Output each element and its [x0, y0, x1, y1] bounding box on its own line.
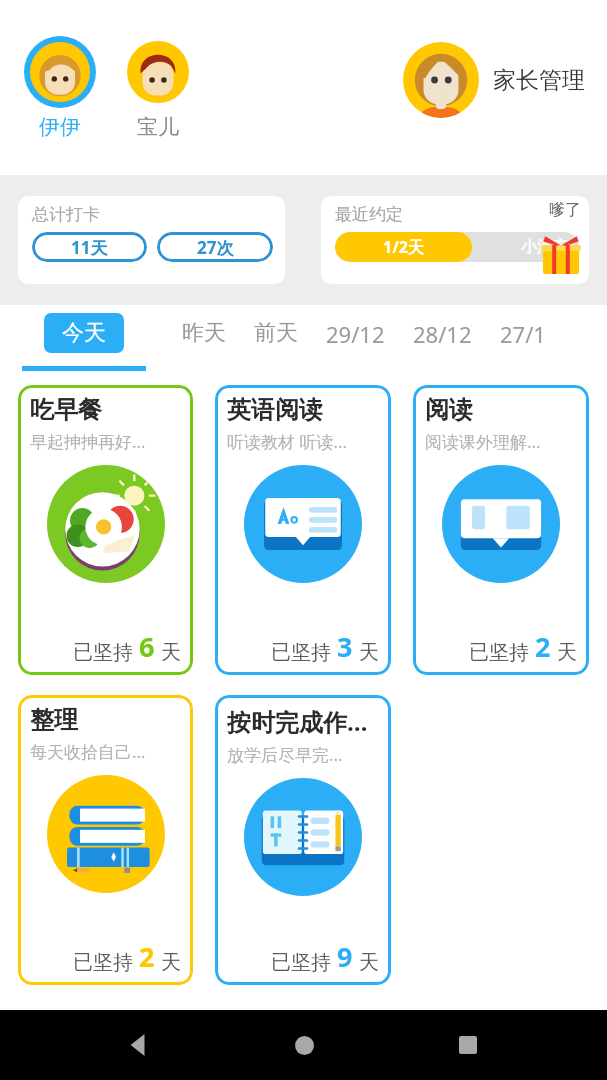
staticText: 已坚持 — [271, 640, 331, 665]
staticText: 29/12 — [326, 319, 385, 349]
staticText: 吃早餐 — [30, 395, 102, 425]
button[interactable]: 今天 — [44, 313, 124, 353]
staticText: 听读教材 听读… — [227, 430, 347, 453]
button[interactable]: 吃早餐 — [18, 385, 193, 675]
staticText: 天 — [557, 640, 577, 665]
button[interactable]: Home — [278, 1019, 330, 1071]
staticText: 已坚持 — [73, 950, 133, 975]
staticText: 天 — [359, 640, 379, 665]
staticText: 1/2天 — [383, 236, 424, 258]
staticText: 昨天 — [182, 319, 226, 347]
button[interactable]: 宝儿 — [122, 36, 194, 140]
button[interactable]: 总计打卡 — [18, 196, 285, 284]
staticText: 已坚持 — [469, 640, 529, 665]
staticText: 阅读 — [425, 395, 473, 425]
staticText: 27次 — [197, 236, 234, 259]
staticText: 2 — [535, 628, 551, 665]
staticText: 已坚持 — [73, 640, 133, 665]
staticText: 总计打卡 — [32, 204, 100, 225]
button[interactable]: 阅读 — [413, 385, 589, 675]
staticText: 伊伊 — [39, 114, 81, 140]
staticText: 9 — [337, 938, 353, 975]
staticText: 3 — [337, 628, 353, 665]
button[interactable]: 伊伊 — [24, 36, 96, 140]
button[interactable]: 按时完成作… — [215, 695, 391, 985]
staticText: 2 — [139, 938, 155, 975]
staticText: 最近约定 — [335, 204, 403, 225]
staticText: 整理 — [30, 705, 78, 735]
staticText: 天 — [359, 950, 379, 975]
staticText: 每天收拾自己… — [30, 740, 146, 763]
staticText: 家长管理 — [493, 66, 585, 95]
staticText: 阅读课外理解… — [425, 430, 541, 453]
staticText: 天 — [161, 640, 181, 665]
staticText: 11天 — [71, 236, 108, 259]
button[interactable]: 27/1 — [486, 313, 560, 355]
other: Gift reward — [539, 230, 583, 274]
staticText: 28/12 — [413, 319, 472, 349]
button[interactable]: Back — [113, 1019, 165, 1071]
button[interactable]: 英语阅读 — [215, 385, 391, 675]
button[interactable]: 昨天 — [168, 313, 240, 353]
staticText: 按时完成作… — [227, 705, 368, 738]
staticText: 早起抻抻再好… — [30, 430, 146, 453]
button[interactable]: 整理 — [18, 695, 193, 985]
button[interactable]: 最近约定 — [321, 196, 589, 284]
staticText: 放学后尽早完… — [227, 743, 343, 766]
staticText: 天 — [161, 950, 181, 975]
button[interactable]: Recent apps — [442, 1019, 494, 1071]
staticText: 小汽车 — [521, 237, 569, 257]
button[interactable]: 家长管理 — [403, 42, 585, 118]
staticText: 宝儿 — [137, 114, 179, 140]
staticText: 已坚持 — [271, 950, 331, 975]
staticText: 27/1 — [500, 319, 546, 349]
button[interactable]: 28/12 — [399, 313, 486, 355]
staticText: 英语阅读 — [227, 395, 323, 425]
staticText: 6 — [139, 628, 155, 665]
button[interactable]: 29/12 — [312, 313, 399, 355]
staticText: 前天 — [254, 319, 298, 347]
staticText: 嗲了 — [549, 200, 581, 220]
button[interactable]: 前天 — [240, 313, 312, 353]
staticText: 今天 — [62, 319, 106, 347]
